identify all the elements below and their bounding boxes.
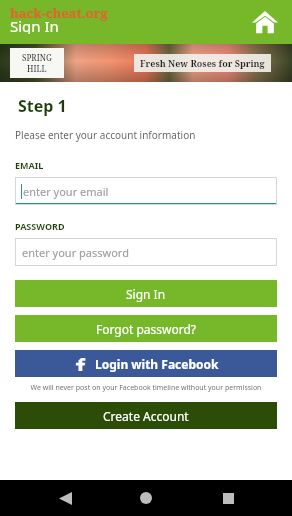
button[interactable]: Forgot password?	[15, 315, 277, 342]
button[interactable]: Recent apps	[211, 481, 245, 515]
staticText: We will never post on your Facebook time…	[15, 383, 277, 393]
staticText: Sign In	[126, 286, 166, 302]
staticText: SPRING	[22, 52, 52, 63]
staticText: hack-cheat.org	[10, 4, 108, 22]
staticText: enter your password	[22, 245, 129, 260]
button[interactable]: enter your email	[15, 177, 277, 205]
button[interactable]: Home	[248, 5, 282, 39]
staticText: EMAIL	[15, 159, 44, 171]
staticText: enter your email	[23, 184, 109, 199]
staticText: Sign In	[10, 16, 59, 34]
staticText: Login with Facebook	[95, 356, 219, 372]
button[interactable]: Home	[129, 481, 163, 515]
button[interactable]: Create Account	[15, 402, 277, 429]
staticText: Please enter your account information	[15, 128, 196, 142]
button[interactable]: enter your password	[15, 238, 277, 266]
button[interactable]: Back	[48, 481, 82, 515]
button[interactable]: hack-cheat.org	[8, 0, 110, 44]
staticText: PASSWORD	[15, 220, 65, 232]
staticText: Step 1	[18, 95, 67, 117]
staticText: Create Account	[103, 408, 189, 424]
staticText: Fresh New Roses for Spring	[140, 57, 265, 69]
staticText: Forgot password?	[96, 321, 197, 337]
button[interactable]: Fresh New Roses for Spring promotion	[0, 44, 292, 82]
staticText: HILL	[27, 63, 47, 74]
button[interactable]: Login with Facebook	[15, 350, 277, 377]
button[interactable]: Sign In	[15, 280, 277, 307]
